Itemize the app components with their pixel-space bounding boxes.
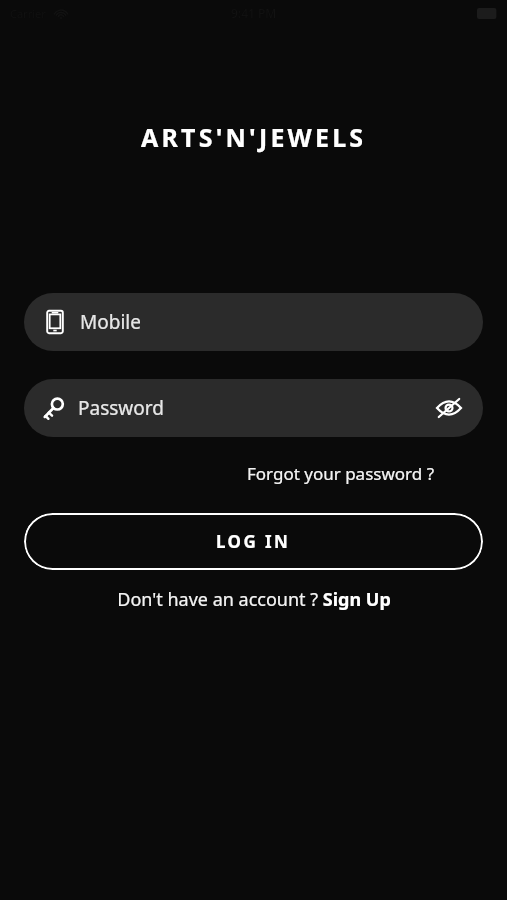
staticText: ARTS'N'JEWELS [141, 120, 367, 154]
button[interactable]: Don't have an account ? Sign Up [113, 584, 395, 615]
staticText: Mobile [80, 309, 141, 335]
staticText: Forgot your password ? [247, 462, 435, 485]
button[interactable]: Password [24, 379, 483, 437]
button[interactable]: LOG IN [24, 513, 483, 570]
staticText: Password [78, 395, 429, 421]
button[interactable]: Mobile [24, 293, 483, 351]
staticText: Don't have an account ? Sign Up [117, 587, 391, 612]
staticText: LOG IN [216, 530, 291, 553]
button[interactable]: Show password [429, 388, 469, 428]
button[interactable]: Forgot your password ? [245, 459, 437, 488]
